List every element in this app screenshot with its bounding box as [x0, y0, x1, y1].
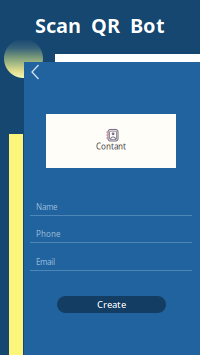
button[interactable]: Contant: [46, 114, 176, 168]
button[interactable]: Create: [57, 296, 166, 313]
button[interactable]: Back: [26, 62, 46, 82]
staticText: Scan QR Bot: [35, 12, 165, 39]
staticText: Name: [36, 202, 58, 212]
staticText: Create: [97, 298, 126, 311]
staticText: Phone: [36, 229, 61, 239]
staticText: Email: [36, 257, 55, 267]
staticText: Contant: [96, 141, 126, 152]
